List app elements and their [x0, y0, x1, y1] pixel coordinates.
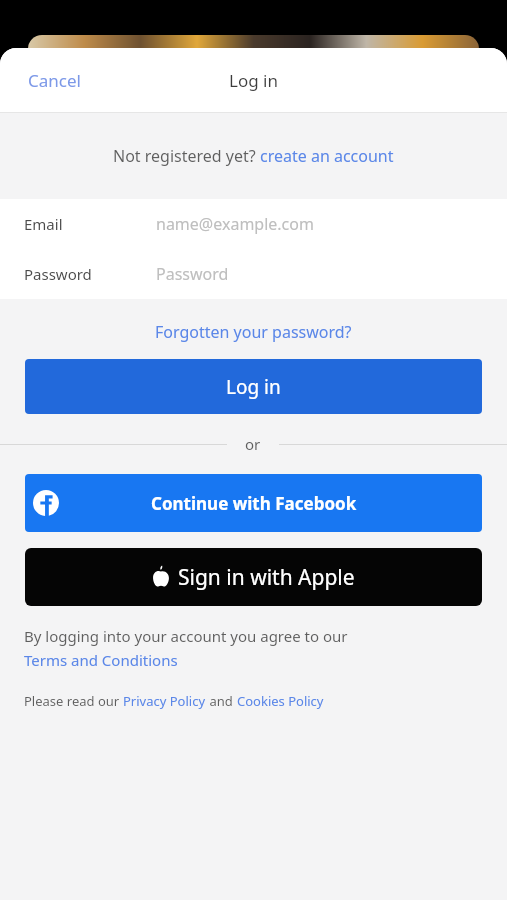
staticText: or	[245, 434, 261, 454]
button[interactable]: Cookies Policy	[237, 692, 324, 710]
staticText: Cancel	[28, 69, 81, 92]
staticText: Continue with Facebook	[151, 492, 357, 515]
staticText: Log in	[226, 374, 281, 400]
staticText: create an account	[260, 145, 394, 167]
staticText: and	[206, 692, 237, 710]
button[interactable]: Email	[0, 199, 507, 249]
button[interactable]: Log in	[25, 359, 482, 414]
button[interactable]: Privacy Policy	[123, 692, 206, 710]
button[interactable]: create an account	[260, 145, 394, 167]
button[interactable]: Password	[0, 249, 507, 299]
staticText: Log in	[229, 69, 278, 92]
button[interactable]: Forgotten your password?	[147, 317, 360, 347]
staticText: Forgotten your password?	[155, 321, 352, 343]
staticText: name@example.com	[156, 213, 314, 235]
button[interactable]: Sign in with Apple	[25, 548, 482, 606]
button[interactable]: Continue with Facebook	[25, 474, 482, 532]
staticText: Email	[24, 214, 63, 234]
staticText: Not registered yet?	[113, 145, 260, 167]
button[interactable]: Cancel	[20, 63, 89, 98]
staticText: Password	[156, 263, 229, 285]
staticText: Sign in with Apple	[178, 563, 355, 592]
staticText: Please read our	[24, 692, 123, 710]
staticText: Terms and Conditions	[24, 650, 178, 670]
staticText: Password	[24, 264, 92, 284]
staticText: Cookies Policy	[237, 692, 324, 710]
button[interactable]: Terms and Conditions	[24, 650, 178, 670]
staticText: Privacy Policy	[123, 692, 206, 710]
staticText: By logging into your account you agree t…	[24, 626, 348, 646]
